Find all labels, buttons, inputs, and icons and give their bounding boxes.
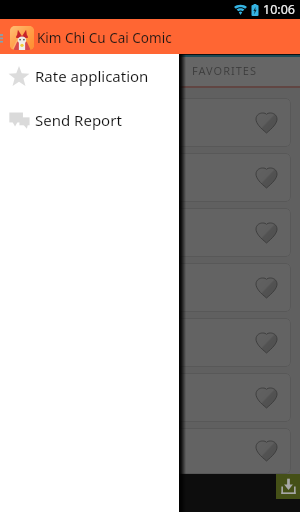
staticText: RECENT xyxy=(52,63,99,78)
staticText: Send Report xyxy=(35,110,122,130)
button[interactable]: RECENT xyxy=(0,55,150,88)
button[interactable]: Rate application xyxy=(0,54,179,98)
staticText: 10:06 xyxy=(263,1,295,18)
button[interactable]: Open navigation drawer xyxy=(0,20,10,55)
button[interactable] xyxy=(9,373,291,422)
button[interactable]: Send Report xyxy=(0,98,179,142)
button[interactable]: FAVORITES xyxy=(150,55,300,88)
staticText: Rate application xyxy=(35,66,149,86)
button[interactable] xyxy=(9,98,291,147)
button[interactable] xyxy=(9,318,291,367)
staticText: FAVORITES xyxy=(192,63,258,78)
button[interactable] xyxy=(9,428,291,474)
button[interactable]: Download xyxy=(276,474,300,499)
button[interactable] xyxy=(9,153,291,202)
button[interactable] xyxy=(9,208,291,257)
staticText: Kim Chi Cu Cai Comic xyxy=(37,29,172,47)
button[interactable] xyxy=(9,263,291,312)
